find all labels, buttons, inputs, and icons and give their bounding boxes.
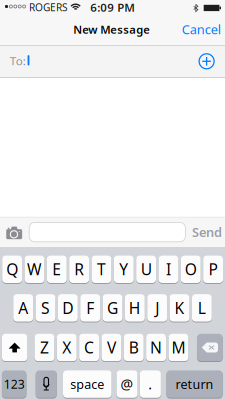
button[interactable]: N xyxy=(146,334,166,362)
button[interactable]: B xyxy=(124,334,144,362)
button[interactable]: V xyxy=(101,334,121,362)
staticText: W xyxy=(27,259,42,280)
staticText: C xyxy=(84,337,94,358)
staticText: U xyxy=(141,259,152,280)
staticText: R xyxy=(74,259,84,280)
staticText: A xyxy=(18,297,28,318)
button[interactable]: L xyxy=(192,294,212,322)
staticText: O xyxy=(185,259,197,280)
button[interactable]: F xyxy=(80,294,100,322)
button[interactable]: G xyxy=(103,294,122,322)
staticText: T xyxy=(97,259,106,280)
staticText: space xyxy=(70,376,104,393)
staticText: P xyxy=(209,259,218,280)
staticText: Cancel xyxy=(182,21,221,38)
staticText: . xyxy=(148,375,152,394)
staticText: S xyxy=(41,297,50,318)
staticText: Y xyxy=(119,259,128,280)
button[interactable]: Delete xyxy=(197,334,223,362)
button[interactable]: Send xyxy=(187,219,225,246)
button[interactable]: Q xyxy=(2,256,22,284)
staticText: New Message xyxy=(73,22,150,37)
button[interactable]: Cancel xyxy=(175,16,225,43)
button[interactable]: S xyxy=(36,294,55,322)
button[interactable]: Add contact xyxy=(194,48,220,74)
button[interactable]: Shift xyxy=(2,334,27,362)
button[interactable]: X xyxy=(57,334,77,362)
staticText: Z xyxy=(40,337,49,358)
staticText: F xyxy=(86,297,94,318)
button[interactable]: Y xyxy=(114,256,134,284)
button[interactable]: O xyxy=(181,256,201,284)
button[interactable]: Camera xyxy=(1,219,27,246)
staticText: @ xyxy=(120,375,133,394)
staticText: H xyxy=(129,297,141,318)
staticText: 6:09 PM xyxy=(90,0,135,15)
button[interactable]: P xyxy=(203,256,223,284)
staticText: V xyxy=(107,337,116,358)
staticText: J xyxy=(155,297,159,318)
button[interactable]: R xyxy=(69,256,89,284)
staticText: M xyxy=(171,337,185,358)
staticText: B xyxy=(129,337,139,358)
staticText: G xyxy=(107,297,118,318)
button[interactable]: M xyxy=(168,334,188,362)
button[interactable]: @ xyxy=(116,370,138,399)
staticText: E xyxy=(52,259,61,280)
staticText: To: xyxy=(10,53,26,69)
button[interactable]: J xyxy=(147,294,167,322)
button[interactable]: K xyxy=(170,294,189,322)
staticText: Send xyxy=(192,223,222,241)
button[interactable]: . xyxy=(140,370,161,399)
staticText: X xyxy=(62,337,71,358)
staticText: N xyxy=(150,337,162,358)
button[interactable]: I xyxy=(158,256,178,284)
button[interactable]: W xyxy=(24,256,44,284)
button[interactable]: 123 xyxy=(2,370,26,399)
staticText: return xyxy=(176,376,214,393)
staticText: K xyxy=(174,297,184,318)
button[interactable]: Dictation xyxy=(36,370,57,399)
button[interactable]: C xyxy=(79,334,99,362)
button[interactable]: E xyxy=(47,256,67,284)
button[interactable]: T xyxy=(91,256,111,284)
staticText: L xyxy=(198,297,206,318)
staticText: I xyxy=(166,259,171,280)
staticText: Q xyxy=(6,259,18,280)
button[interactable]: A xyxy=(13,294,33,322)
staticText: 123 xyxy=(4,376,25,392)
button[interactable]: U xyxy=(136,256,156,284)
button[interactable]: D xyxy=(58,294,78,322)
staticText: ROGERS xyxy=(29,0,68,14)
button[interactable]: H xyxy=(125,294,145,322)
button[interactable]: return xyxy=(166,370,223,399)
button[interactable]: space xyxy=(63,370,112,399)
button[interactable]: Z xyxy=(34,334,54,362)
staticText: D xyxy=(62,297,73,318)
